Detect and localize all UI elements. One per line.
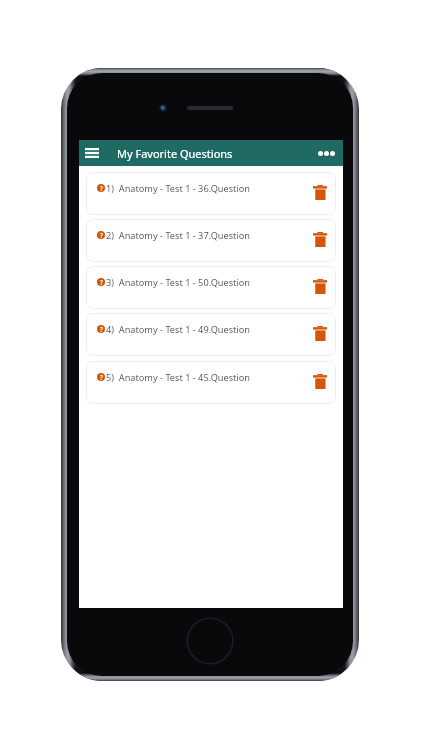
staticText: 4) Anatomy - Test 1 - 49.Question	[106, 323, 250, 336]
staticText: My Favorite Questions	[117, 146, 233, 161]
button[interactable]: ?	[86, 172, 336, 215]
staticText: ?	[100, 373, 103, 381]
staticText: ?	[100, 278, 103, 286]
staticText: 1) Anatomy - Test 1 - 36.Question	[106, 182, 250, 195]
staticText: ?	[100, 231, 103, 239]
button[interactable]: Home	[186, 617, 234, 665]
button[interactable]: Delete question	[307, 364, 333, 398]
staticText: ?	[100, 184, 103, 192]
button[interactable]: Delete question	[307, 269, 333, 303]
button[interactable]: More options	[314, 140, 339, 166]
staticText: ?	[100, 325, 103, 333]
button[interactable]: ?	[86, 313, 336, 356]
button[interactable]: Delete question	[307, 175, 333, 209]
button[interactable]: Delete question	[307, 222, 333, 256]
button[interactable]: Delete question	[307, 316, 333, 350]
button[interactable]: ?	[86, 266, 336, 309]
button[interactable]: ?	[86, 219, 336, 262]
staticText: 3) Anatomy - Test 1 - 50.Question	[106, 276, 250, 289]
staticText: 5) Anatomy - Test 1 - 45.Question	[106, 371, 250, 384]
staticText: 2) Anatomy - Test 1 - 37.Question	[106, 229, 250, 242]
button[interactable]: Open navigation menu	[81, 140, 103, 166]
button[interactable]: ?	[86, 361, 336, 404]
